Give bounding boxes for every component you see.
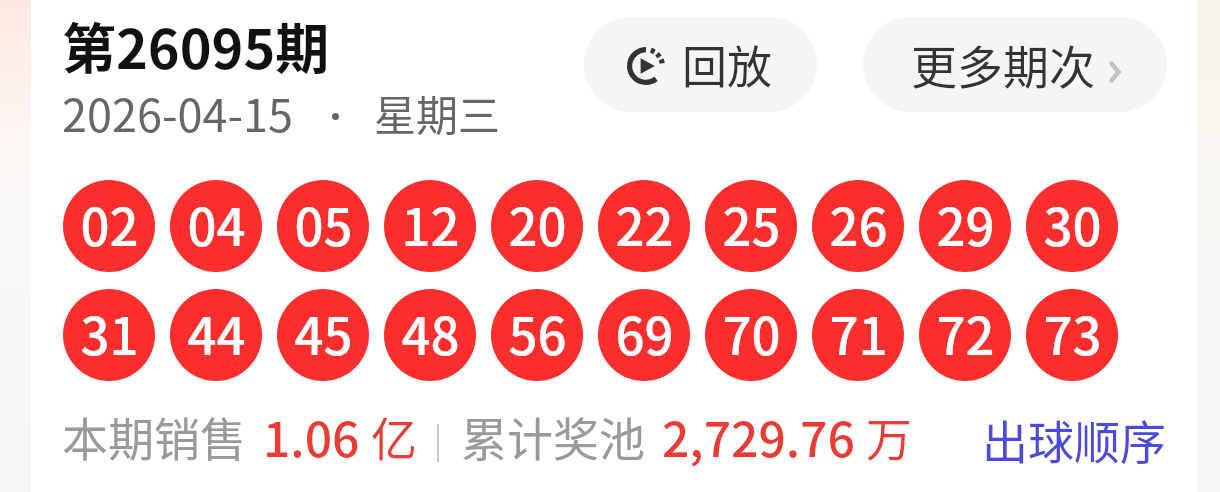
staticText: 70 <box>722 296 781 370</box>
button[interactable]: 25 <box>705 180 797 272</box>
button[interactable]: 73 <box>1026 289 1118 381</box>
button[interactable]: 72 <box>919 289 1011 381</box>
staticText: 万 <box>866 403 912 470</box>
button[interactable]: 04 <box>170 180 262 272</box>
button[interactable]: 30 <box>1026 180 1118 272</box>
staticText: 2026-04-15 <box>62 80 294 145</box>
button[interactable]: 22 <box>598 180 690 272</box>
staticText: 12 <box>401 187 460 261</box>
button[interactable]: 48 <box>384 289 476 381</box>
button[interactable]: 出球顺序 <box>962 392 1186 487</box>
staticText: 45 <box>294 296 353 370</box>
button[interactable]: 71 <box>812 289 904 381</box>
staticText: 04 <box>187 187 246 261</box>
button[interactable]: 05 <box>277 180 369 272</box>
button[interactable]: 26 <box>812 180 904 272</box>
button[interactable]: 56 <box>491 289 583 381</box>
staticText: 回放 <box>682 32 773 97</box>
staticText: 出球顺序 <box>982 406 1166 473</box>
button[interactable]: 12 <box>384 180 476 272</box>
staticText: 71 <box>829 296 888 370</box>
staticText: 第26095期 <box>62 6 330 84</box>
staticText: 48 <box>401 296 460 370</box>
staticText: 31 <box>80 296 139 370</box>
staticText: 73 <box>1043 296 1102 370</box>
button[interactable]: 29 <box>919 180 1011 272</box>
other: More draws <box>1109 61 1121 83</box>
staticText: 1.06 <box>263 401 360 471</box>
staticText: 72 <box>936 296 995 370</box>
staticText: 69 <box>615 296 674 370</box>
staticText: 56 <box>508 296 567 370</box>
staticText: 05 <box>294 187 353 261</box>
button[interactable]: 44 <box>170 289 262 381</box>
staticText: 2,729.76 <box>662 401 855 471</box>
button[interactable]: 70 <box>705 289 797 381</box>
button[interactable]: 02 <box>63 180 155 272</box>
button[interactable]: 31 <box>63 289 155 381</box>
staticText: 44 <box>187 296 246 370</box>
staticText: 累计奖池 <box>461 403 645 470</box>
button[interactable]: 45 <box>277 289 369 381</box>
staticText: 26 <box>829 187 888 261</box>
button[interactable]: 69 <box>598 289 690 381</box>
staticText: 亿 <box>371 403 417 470</box>
staticText: 02 <box>80 187 139 261</box>
staticText: 星期三 <box>374 82 501 143</box>
button[interactable]: Replay draw animation <box>584 17 817 112</box>
staticText: 30 <box>1043 187 1102 261</box>
staticText: 25 <box>722 187 781 261</box>
staticText: 更多期次 <box>911 31 1095 98</box>
staticText: 20 <box>508 187 567 261</box>
other: Replay draw animation <box>627 47 665 85</box>
button[interactable]: 20 <box>491 180 583 272</box>
button[interactable]: 更多期次 <box>863 17 1167 112</box>
staticText: 22 <box>615 187 674 261</box>
staticText: 29 <box>936 187 995 261</box>
staticText: 本期销售 <box>62 403 246 470</box>
